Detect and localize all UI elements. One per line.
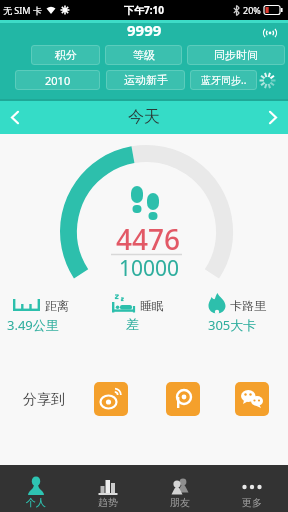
staticText: 2010 [45, 73, 71, 88]
staticText: 睡眠 [140, 298, 164, 313]
button[interactable] [94, 382, 128, 416]
staticText: 积分 [55, 48, 77, 62]
staticText: 9999 [127, 20, 162, 40]
staticText: 运动新手 [124, 73, 168, 87]
staticText: 更多 [242, 496, 262, 509]
button[interactable] [262, 106, 284, 128]
staticText: 下午7:10 [124, 3, 164, 17]
button[interactable]: 运动新手 [106, 70, 185, 90]
staticText: 距离 [45, 298, 69, 313]
button[interactable] [166, 382, 200, 416]
staticText: 差 [126, 316, 139, 332]
button[interactable] [235, 382, 269, 416]
button[interactable]: 个人 [0, 465, 72, 512]
staticText: 朋友 [170, 496, 190, 509]
staticText: 趋势 [98, 496, 118, 509]
staticText: 蓝牙同步.. [201, 73, 247, 87]
staticText: 305大卡 [208, 316, 257, 334]
button[interactable]: 朋友 [144, 465, 216, 512]
button[interactable]: 更多 [216, 465, 288, 512]
staticText: 同步时间 [214, 48, 258, 62]
button[interactable]: 蓝牙同步.. [190, 70, 257, 90]
staticText: 等级 [133, 48, 155, 62]
staticText: 3.49公里 [7, 316, 59, 334]
button[interactable]: 等级 [105, 45, 182, 65]
staticText: 10000 [119, 254, 180, 283]
button[interactable]: 2010 [15, 70, 100, 90]
button[interactable]: 积分 [31, 45, 100, 65]
staticText: 卡路里 [230, 298, 266, 313]
button[interactable]: 同步时间 [187, 45, 285, 65]
staticText: 今天 [128, 107, 160, 127]
button[interactable] [4, 106, 26, 128]
staticText: 4476 [116, 220, 181, 258]
staticText: 分享到 [23, 391, 65, 409]
staticText: 个人 [26, 496, 46, 509]
staticText: 20% [243, 4, 261, 16]
button[interactable]: 趋势 [72, 465, 144, 512]
staticText: 无 SIM 卡 [3, 4, 42, 16]
